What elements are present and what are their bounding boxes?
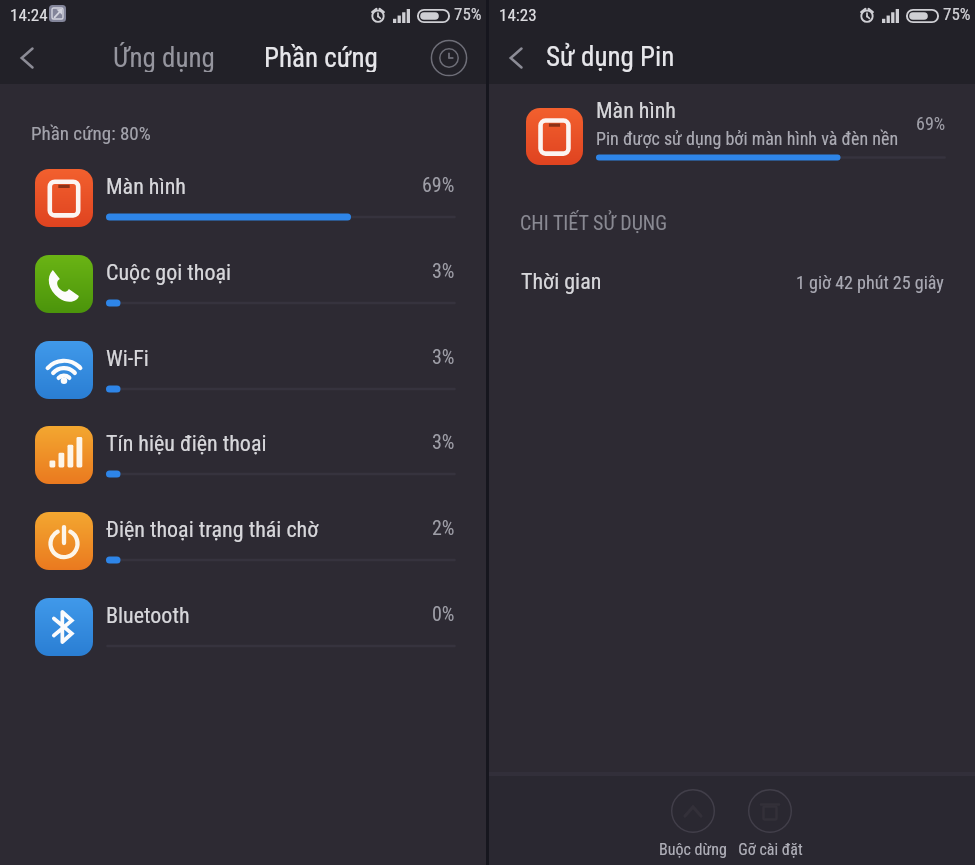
staticText: 0% (432, 602, 455, 625)
staticText: 1 giờ 42 phút 25 giây (796, 272, 944, 293)
staticText: CHI TIẾT SỬ DỤNG (520, 211, 668, 234)
staticText: 14:23 (499, 5, 537, 25)
staticText: Màn hình (106, 174, 186, 200)
button[interactable]: Điện thoại trạng thái chờ (0, 489, 486, 575)
button[interactable]: Wi-Fi (0, 318, 486, 404)
button[interactable]: Màn hình (489, 84, 975, 180)
staticText: Thời gian (521, 269, 602, 295)
staticText: Phần cứng (264, 42, 378, 72)
staticText: 2% (432, 516, 455, 539)
button[interactable]: Back (489, 32, 543, 84)
button[interactable]: Màn hình (0, 146, 486, 232)
staticText: 14:24 (10, 5, 48, 25)
staticText: Sử dụng Pin (546, 41, 675, 73)
staticText: Tín hiệu điện thoại (106, 431, 267, 457)
staticText: 75% (454, 4, 482, 24)
staticText: Màn hình (596, 98, 676, 124)
staticText: 3% (432, 430, 455, 453)
button[interactable]: Phần cứng (250, 31, 392, 83)
staticText: Cuộc gọi thoại (106, 260, 232, 286)
staticText: Điện thoại trạng thái chờ (106, 517, 319, 543)
staticText: Ứng dụng (113, 42, 215, 72)
staticText: Buộc dừng (659, 840, 727, 859)
button[interactable]: Tín hiệu điện thoại (0, 403, 486, 489)
staticText: 69% (422, 173, 455, 196)
button[interactable]: Ứng dụng (99, 31, 229, 83)
button[interactable]: Thời gian (489, 259, 975, 305)
staticText: Phần cứng: 80% (31, 122, 151, 144)
staticText: Wi-Fi (106, 346, 149, 372)
staticText: 69% (916, 113, 946, 134)
staticText: 3% (432, 345, 455, 368)
staticText: Gỡ cài đặt (738, 840, 803, 859)
staticText: 3% (432, 259, 455, 282)
staticText: Bluetooth (106, 603, 190, 629)
button[interactable]: Bluetooth (0, 575, 486, 661)
staticText: 75% (943, 4, 971, 24)
button[interactable]: Gỡ cài đặt (720, 789, 820, 859)
staticText: Pin được sử dụng bởi màn hình và đèn nền (596, 128, 899, 149)
button[interactable]: Usage history (429, 38, 469, 78)
button[interactable]: Cuộc gọi thoại (0, 232, 486, 318)
button[interactable]: Buộc dừng (643, 789, 743, 859)
button[interactable]: Back (0, 32, 54, 84)
